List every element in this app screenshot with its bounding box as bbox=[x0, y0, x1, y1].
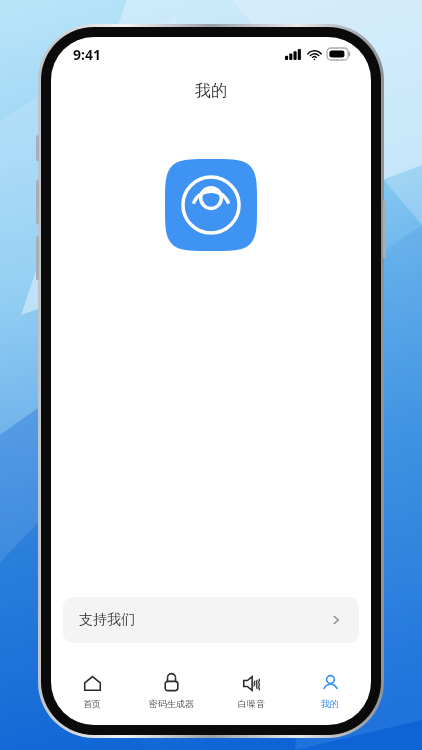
staticText: 我的 bbox=[321, 698, 339, 709]
button[interactable]: 密码生成器 bbox=[133, 671, 209, 711]
staticText: 首页 bbox=[83, 698, 101, 709]
staticText: 我的 bbox=[195, 81, 227, 101]
staticText: 密码生成器 bbox=[149, 698, 194, 709]
button[interactable]: Profile avatar bbox=[165, 159, 257, 251]
button[interactable]: 首页 bbox=[54, 671, 130, 711]
button[interactable]: 白噪音 bbox=[213, 671, 289, 711]
staticText: 支持我们 bbox=[79, 611, 135, 629]
button[interactable]: 我的 bbox=[292, 671, 368, 711]
button[interactable]: 支持我们 bbox=[63, 597, 359, 643]
staticText: 9:41 bbox=[73, 45, 101, 64]
staticText: 白噪音 bbox=[238, 698, 265, 709]
